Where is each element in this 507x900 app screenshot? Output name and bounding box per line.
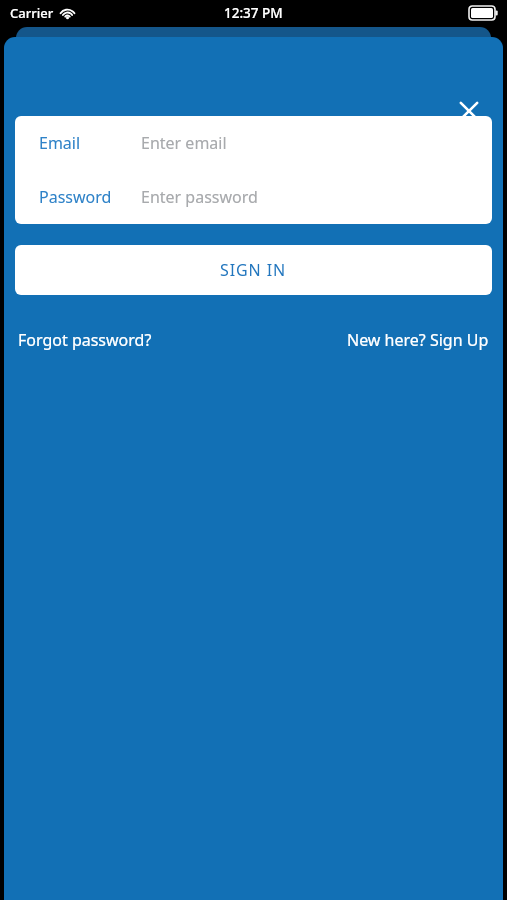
button[interactable]: Close xyxy=(445,87,493,135)
button[interactable]: Forgot password? xyxy=(17,325,153,355)
staticText: 12:37 PM xyxy=(224,4,283,22)
staticText: SIGN IN xyxy=(220,259,287,281)
staticText: Password xyxy=(39,186,112,208)
button[interactable]: Email xyxy=(15,116,492,170)
staticText: Enter email xyxy=(141,132,227,154)
button[interactable]: New here? Sign Up xyxy=(346,325,490,355)
button[interactable]: Password xyxy=(15,170,492,224)
button[interactable]: SIGN IN xyxy=(15,245,492,295)
staticText: Email xyxy=(39,132,81,154)
staticText: New here? Sign Up xyxy=(347,329,489,351)
staticText: Forgot password? xyxy=(18,329,152,351)
staticText: Enter password xyxy=(141,186,258,208)
staticText: Carrier xyxy=(10,4,54,22)
